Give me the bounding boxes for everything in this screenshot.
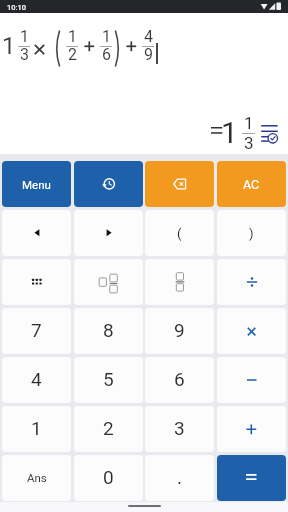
staticText: 2 [103,417,114,439]
staticText: 4 [144,27,153,46]
staticText: 1 [2,32,16,60]
button[interactable]: . [145,455,214,501]
staticText: 10:10 [7,3,27,12]
staticText: 9 [144,45,153,64]
button[interactable]: 6 [145,357,214,403]
staticText: 3 [20,45,29,64]
staticText: Menu [22,178,51,191]
staticText: ( [177,226,182,241]
button[interactable]: 7 [2,308,71,354]
staticText: 5 [103,368,114,390]
button[interactable]: 5 [74,357,143,403]
button[interactable]: Ans [2,455,71,501]
button[interactable] [74,259,143,305]
staticText: 7 [31,319,42,341]
staticText: 3 [174,417,185,439]
button[interactable]: 3 [145,406,214,452]
button[interactable] [217,308,286,354]
staticText: 0 [103,466,114,488]
staticText: 6 [102,45,111,64]
button[interactable]: ( [145,210,214,256]
staticText: 9 [174,319,185,341]
button[interactable]: ) [217,210,286,256]
button[interactable]: AC [217,161,286,207]
button[interactable]: 0 [74,455,143,501]
button[interactable] [217,259,286,305]
staticText: ) [249,226,254,241]
staticText: 1 [102,27,111,46]
button[interactable] [145,259,214,305]
staticText: . [177,466,183,488]
button[interactable]: 1 [2,406,71,452]
button[interactable]: 9 [145,308,214,354]
staticText: 3 [244,133,254,153]
staticText: AC [243,177,260,192]
staticText: 1 [244,113,254,133]
button[interactable] [2,259,71,305]
button[interactable] [217,406,286,452]
staticText: 2 [68,45,77,64]
staticText: 1 [221,115,238,150]
button[interactable]: 8 [74,308,143,354]
staticText: 4 [31,368,42,390]
button[interactable] [217,455,286,501]
button[interactable]: 4 [2,357,71,403]
button[interactable] [74,161,143,207]
button[interactable]: Menu [2,161,71,207]
staticText: 8 [103,319,114,341]
staticText: 1 [20,27,29,46]
staticText: 6 [174,368,185,390]
staticText: Ans [27,471,47,484]
button[interactable]: 2 [74,406,143,452]
button[interactable] [74,210,143,256]
button[interactable] [145,161,214,207]
staticText: 1 [31,417,42,439]
button[interactable] [2,210,71,256]
button[interactable] [217,357,286,403]
staticText: 1 [68,27,77,46]
